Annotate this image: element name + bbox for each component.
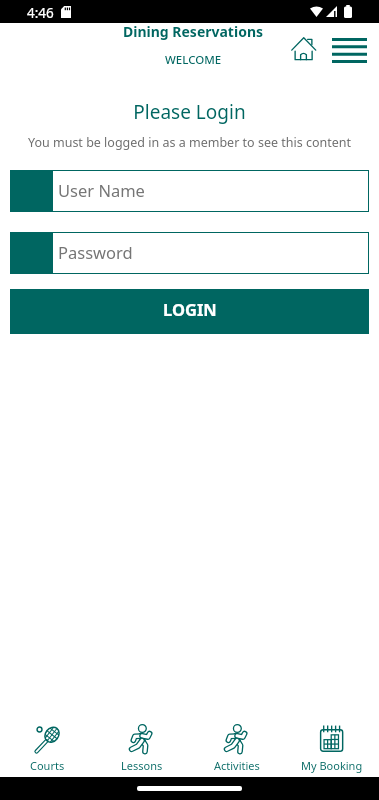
button[interactable]: My Booking (284, 717, 379, 777)
staticText: User Name (58, 179, 145, 201)
button[interactable]: User Name (10, 170, 369, 212)
staticText: My Booking (301, 758, 363, 773)
staticText: Password (58, 241, 133, 263)
staticText: WELCOME (165, 52, 222, 68)
staticText: You must be logged in as a member to see… (0, 134, 379, 151)
staticText: 4:46 (27, 4, 54, 22)
button[interactable]: Activities (189, 717, 284, 777)
staticText: Activities (214, 758, 260, 773)
staticText: Please Login (0, 99, 379, 125)
button[interactable]: Lessons (94, 717, 189, 777)
button[interactable]: Password (10, 232, 369, 274)
staticText: Lessons (121, 758, 163, 773)
button[interactable]: LOGIN (10, 289, 369, 334)
button[interactable]: Menu (326, 31, 373, 69)
staticText: Courts (30, 758, 65, 773)
staticText: Dining Reservations (123, 22, 264, 41)
button[interactable]: Home (287, 34, 320, 62)
staticText: LOGIN (163, 298, 217, 320)
button[interactable]: Courts (0, 717, 94, 777)
